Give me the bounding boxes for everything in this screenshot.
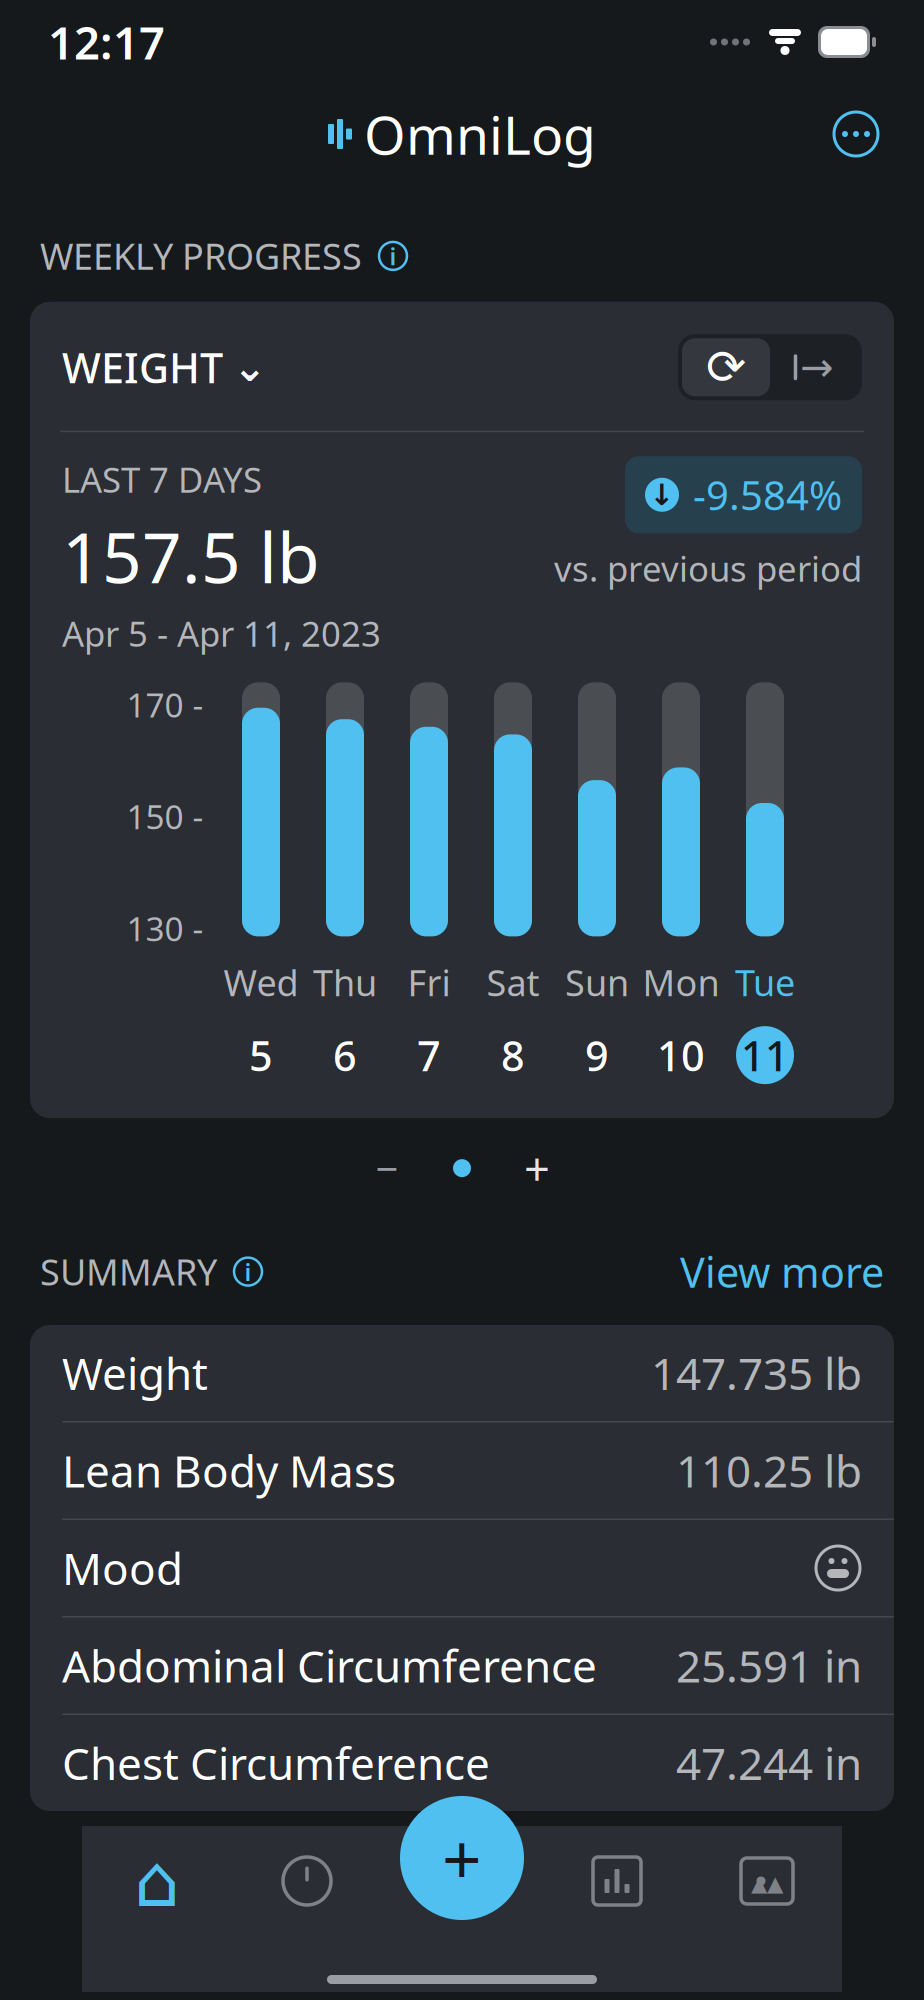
staticText: ↓: [649, 478, 674, 511]
staticText: Lean Body Mass: [62, 1441, 396, 1500]
button[interactable]: Lean Body Mass: [30, 1422, 894, 1520]
staticText: WEIGHT: [62, 340, 223, 395]
staticText: →: [800, 345, 834, 390]
staticText: 25.591 in: [676, 1636, 862, 1695]
staticText: 170 -: [126, 682, 203, 727]
staticText: 157.5 lb: [62, 510, 320, 602]
button[interactable]: Abdominal Circumference: [30, 1617, 894, 1715]
staticText: Sun: [565, 958, 629, 1006]
staticText: SUMMARY: [40, 1248, 217, 1295]
staticText: LAST 7 DAYS: [62, 456, 262, 502]
button[interactable]: Information: [376, 239, 410, 273]
button[interactable]: Show more: [515, 1146, 559, 1190]
button[interactable]: More options: [824, 102, 888, 166]
staticText: 130 -: [126, 906, 203, 950]
staticText: +: [524, 1138, 550, 1198]
button[interactable]: History: [232, 1826, 382, 1936]
staticText: Weight: [62, 1344, 208, 1402]
button[interactable]: Tue: [723, 682, 807, 1084]
staticText: ⌂: [134, 1840, 180, 1922]
staticText: View more: [680, 1244, 884, 1299]
staticText: +: [442, 1812, 482, 1904]
button[interactable]: Charts: [542, 1826, 692, 1936]
staticText: Apr 5 - Apr 11, 2023: [62, 610, 381, 656]
button[interactable]: Home: [82, 1826, 232, 1936]
staticText: 8: [501, 1028, 525, 1083]
staticText: Sat: [486, 958, 539, 1006]
staticText: 47.244 in: [676, 1734, 862, 1792]
staticText: Mood: [62, 1539, 183, 1597]
staticText: ▲▲: [751, 1871, 783, 1896]
staticText: 7: [417, 1028, 441, 1083]
staticText: 5: [249, 1028, 273, 1083]
staticText: 6: [333, 1028, 357, 1083]
staticText: 150 -: [126, 794, 203, 838]
button[interactable]: Photos: [692, 1826, 842, 1936]
staticText: Wed: [223, 958, 298, 1006]
button[interactable]: Chest Circumference: [30, 1715, 894, 1811]
staticText: 11: [741, 1028, 789, 1083]
button[interactable]: Information: [231, 1255, 265, 1289]
staticText: ⟳: [706, 340, 746, 394]
staticText: i: [244, 1256, 251, 1288]
staticText: ⌄: [233, 345, 267, 390]
button[interactable]: Mood: [30, 1520, 894, 1617]
button[interactable]: Show fewer: [365, 1146, 409, 1190]
staticText: −: [375, 1142, 398, 1195]
button[interactable]: Jump to latest: [770, 338, 858, 396]
button[interactable]: Sun: [555, 682, 639, 1084]
button[interactable]: Sat: [471, 682, 555, 1084]
staticText: 12:17: [48, 12, 165, 72]
staticText: WEEKLY PROGRESS: [40, 232, 362, 280]
button[interactable]: Refresh data: [682, 338, 770, 396]
button[interactable]: Fri: [387, 682, 471, 1084]
staticText: Fri: [407, 958, 450, 1006]
button[interactable]: Weight: [30, 1325, 894, 1422]
button[interactable]: Mon: [639, 682, 723, 1084]
staticText: OmniLog: [364, 99, 596, 169]
staticText: Chest Circumference: [62, 1734, 490, 1792]
staticText: Abdominal Circumference: [62, 1636, 597, 1695]
staticText: Mon: [642, 958, 719, 1006]
button[interactable]: Wed: [219, 682, 303, 1084]
button[interactable]: WEIGHT: [62, 330, 263, 405]
staticText: 110.25 lb: [676, 1441, 862, 1500]
staticText: Thu: [313, 958, 377, 1006]
button[interactable]: Add entry: [400, 1796, 524, 1920]
staticText: Tue: [735, 958, 795, 1006]
staticText: vs. previous period: [554, 545, 862, 591]
staticText: i: [389, 240, 396, 272]
staticText: -9.584%: [693, 468, 842, 521]
button[interactable]: Thu: [303, 682, 387, 1084]
staticText: 147.735 lb: [651, 1344, 862, 1402]
staticText: 9: [585, 1028, 609, 1083]
button[interactable]: View more: [680, 1238, 884, 1305]
staticText: 10: [657, 1028, 705, 1083]
